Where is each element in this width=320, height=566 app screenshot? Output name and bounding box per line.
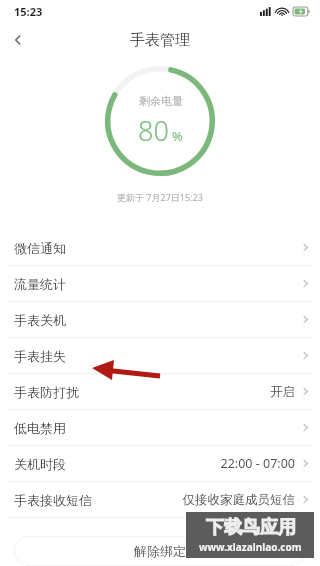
button[interactable]: 解除绑定 <box>14 536 306 566</box>
staticText: 手表关机 <box>14 312 66 328</box>
staticText: 手表防打扰 <box>14 384 79 400</box>
button[interactable]: 微信通知 <box>0 230 320 265</box>
staticText: 仅接收家庭成员短信 <box>182 492 295 508</box>
button[interactable]: 关机时段 <box>0 446 320 481</box>
button[interactable]: 低电禁用 <box>0 410 320 445</box>
staticText: 手表接收短信 <box>14 492 92 508</box>
staticText: 解除绑定 <box>134 543 186 559</box>
staticText: 剩余电量 <box>139 94 183 108</box>
staticText: 手表挂失 <box>14 348 66 364</box>
staticText: 下载鸟应用 <box>206 516 296 539</box>
button[interactable]: 手表关机 <box>0 302 320 337</box>
staticText: www.xlazalnlao.com <box>199 540 302 554</box>
staticText: 关机时段 <box>14 456 66 472</box>
button[interactable]: 流量统计 <box>0 266 320 301</box>
staticText: 80 <box>138 112 169 149</box>
staticText: % <box>172 127 183 145</box>
button[interactable]: 手表挂失 <box>0 338 320 373</box>
button[interactable]: Back <box>0 22 36 58</box>
staticText: 微信通知 <box>14 240 66 256</box>
staticText: 15:23 <box>14 4 43 19</box>
button[interactable]: 手表接收短信 <box>0 482 320 517</box>
button[interactable]: 手表防打扰 <box>0 374 320 409</box>
staticText: 22:00 - 07:00 <box>220 455 295 472</box>
staticText: 手表管理 <box>130 31 190 50</box>
staticText: 更新于 7月27日15:23 <box>117 191 203 203</box>
staticText: 开启 <box>270 384 295 400</box>
staticText: 流量统计 <box>14 276 66 292</box>
staticText: 低电禁用 <box>14 420 66 436</box>
